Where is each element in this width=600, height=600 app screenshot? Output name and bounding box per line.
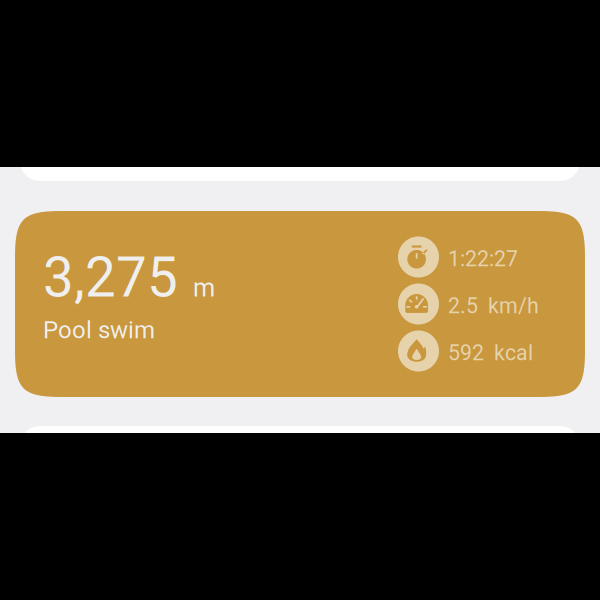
staticText: 2.5 km/h — [448, 293, 539, 318]
staticText: m — [193, 273, 215, 303]
staticText: 1:22:27 — [448, 246, 518, 271]
staticText: 3,275 — [43, 246, 178, 310]
button[interactable]: 3,275 — [15, 211, 585, 397]
staticText: Pool swim — [43, 316, 155, 344]
staticText: 592 kcal — [448, 340, 533, 365]
